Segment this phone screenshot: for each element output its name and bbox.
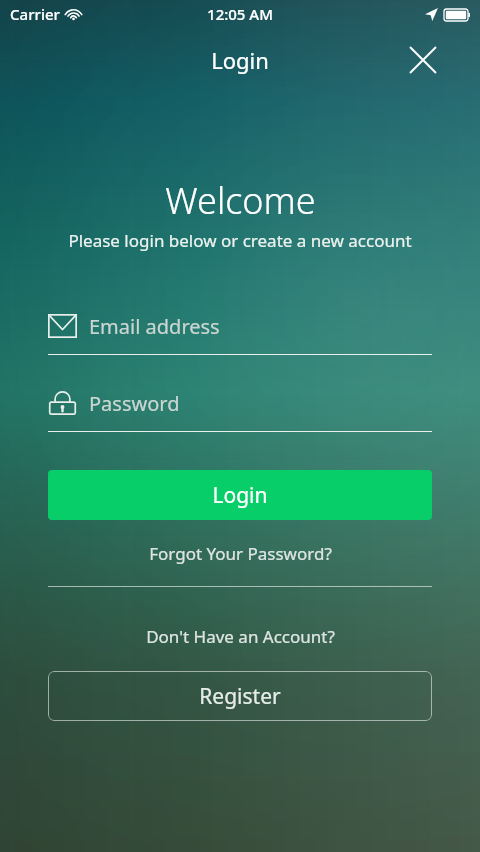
button[interactable]: Password bbox=[48, 385, 432, 432]
button[interactable]: Close bbox=[406, 43, 440, 77]
staticText: Carrier bbox=[10, 4, 60, 24]
button[interactable]: Email bbox=[48, 308, 432, 355]
button[interactable]: Forgot Your Password? bbox=[48, 537, 432, 569]
staticText: Forgot Your Password? bbox=[149, 542, 332, 565]
staticText: Password bbox=[89, 390, 180, 417]
staticText: Don't Have an Account? bbox=[146, 625, 335, 648]
staticText: Please login below or create a new accou… bbox=[68, 229, 412, 252]
staticText: Login bbox=[211, 45, 269, 75]
button[interactable]: Register bbox=[48, 671, 432, 721]
other: Password bbox=[48, 391, 77, 415]
staticText: Email address bbox=[89, 313, 220, 340]
staticText: 12:05 AM bbox=[207, 4, 273, 24]
staticText: Login bbox=[212, 481, 268, 510]
other: Email bbox=[48, 314, 77, 338]
staticText: Register bbox=[199, 682, 281, 711]
staticText: Welcome bbox=[165, 176, 316, 225]
button[interactable]: Login bbox=[48, 470, 432, 520]
